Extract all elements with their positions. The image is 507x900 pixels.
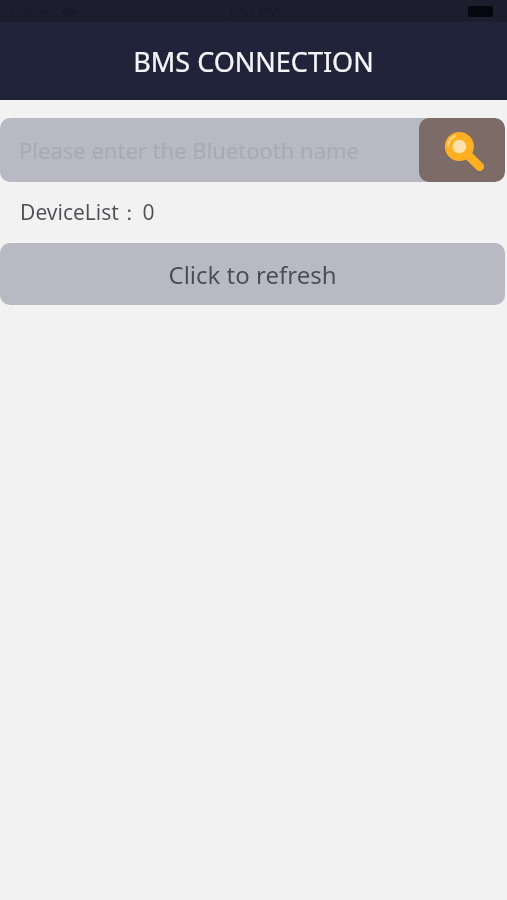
staticText: Click to refresh (168, 258, 337, 291)
staticText: DeviceList： (20, 198, 140, 227)
staticText: Please enter the Bluetooth name (19, 135, 359, 165)
button[interactable]: Click to refresh (0, 243, 505, 305)
staticText: BMS CONNECTION (133, 43, 374, 80)
button[interactable]: Please enter the Bluetooth name (0, 118, 505, 182)
staticText: 0 (142, 198, 155, 227)
button[interactable]: Search (419, 118, 505, 182)
